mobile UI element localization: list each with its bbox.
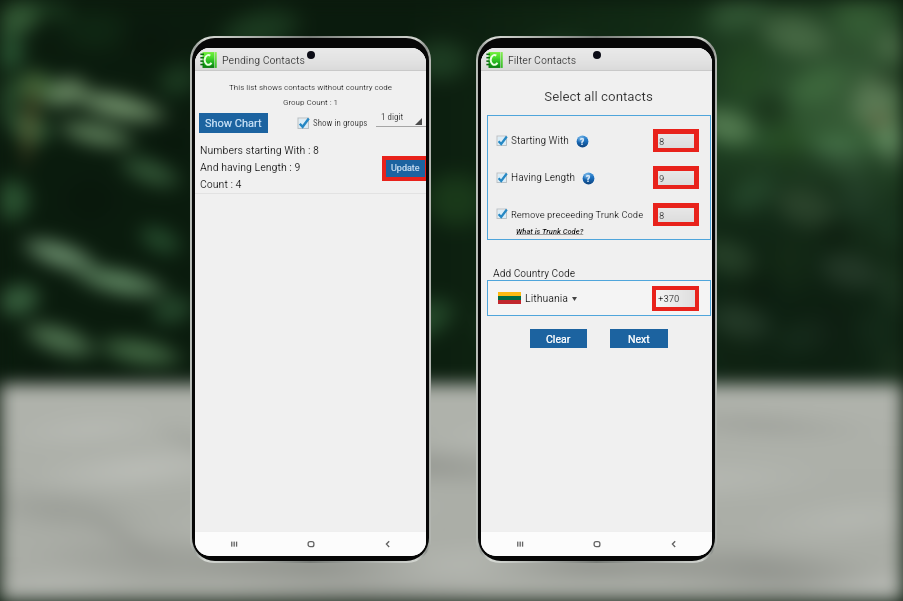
button[interactable]: Update [386, 160, 425, 177]
button[interactable]: Recent apps [481, 532, 558, 556]
staticText: 9 [659, 173, 665, 184]
staticText: 8 [659, 210, 665, 221]
staticText: Add Country Code [493, 268, 576, 280]
button[interactable]: Help [576, 135, 589, 148]
button[interactable]: Starting With [497, 134, 589, 148]
button[interactable]: Show in groups [298, 116, 368, 130]
staticText: Lithuania [525, 292, 568, 304]
staticText: ? [580, 137, 585, 147]
staticText: Pending Contacts [222, 54, 305, 66]
button[interactable]: 8 [658, 134, 694, 148]
staticText: Remove preceeding Trunk Code [511, 209, 644, 220]
staticText: ? [586, 174, 591, 184]
staticText: Show in groups [313, 118, 368, 129]
button[interactable]: What is Trunk Code? [516, 227, 584, 236]
button[interactable]: 1 digit [376, 111, 426, 122]
button[interactable]: Next [610, 329, 668, 348]
staticText: +370 [658, 293, 680, 304]
staticText: Starting With [511, 135, 569, 147]
button[interactable]: 9 [658, 171, 694, 185]
button[interactable]: Remove preceeding Trunk Code [497, 207, 644, 221]
button[interactable]: Home [272, 532, 349, 556]
button[interactable]: +370 [656, 290, 695, 307]
button[interactable]: Home [558, 532, 635, 556]
button[interactable]: Recent apps [195, 532, 272, 556]
staticText: Select all contacts [483, 89, 712, 105]
staticText: And having Length : 9 [200, 161, 301, 173]
button[interactable]: Back [635, 532, 712, 556]
staticText: Numbers starting With : 8 [200, 144, 319, 156]
staticText: This list shows contacts without country… [195, 83, 426, 92]
staticText: Next [628, 333, 650, 345]
staticText: Having Length [511, 172, 575, 184]
staticText: Show Chart [205, 117, 262, 130]
button[interactable]: Back [349, 532, 426, 556]
staticText: 1 digit [381, 112, 404, 123]
button[interactable]: 8 [658, 208, 694, 222]
button[interactable]: Lithuania [498, 280, 577, 316]
button[interactable]: Having Length [497, 171, 595, 185]
staticText: Clear [546, 333, 571, 345]
button[interactable]: Show Chart [199, 113, 268, 133]
button[interactable]: Help [582, 172, 595, 185]
staticText: Update [391, 163, 420, 174]
staticText: 8 [659, 136, 665, 147]
staticText: Count : 4 [200, 178, 242, 190]
staticText: Group Count : 1 [195, 98, 426, 107]
staticText: Filter Contacts [508, 54, 577, 66]
button[interactable]: Clear [530, 329, 587, 348]
